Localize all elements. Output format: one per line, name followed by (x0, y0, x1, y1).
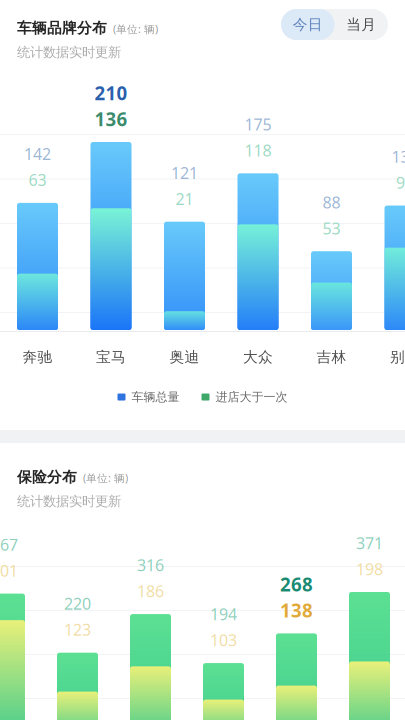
staticText: 175 (244, 114, 271, 135)
staticText: 今日 (293, 15, 323, 33)
staticText: 301 (0, 560, 18, 581)
staticText: 142 (24, 143, 51, 164)
staticText: 奥迪 (169, 348, 199, 366)
staticText: 进店大于一次 (215, 390, 287, 404)
staticText: 奔驰 (22, 348, 52, 366)
staticText: 268 (280, 572, 313, 597)
staticText: 车辆品牌分布 (17, 19, 107, 37)
staticText: 车辆总量 (131, 390, 179, 404)
staticText: 63 (28, 169, 46, 190)
staticText: 当月 (346, 15, 376, 33)
staticText: 123 (64, 619, 91, 640)
staticText: 210 (94, 81, 127, 105)
staticText: 别克 (390, 348, 405, 366)
staticText: 194 (210, 603, 237, 625)
staticText: (单位: 辆) (83, 471, 128, 485)
staticText: 138 (280, 598, 313, 623)
staticText: 53 (322, 218, 340, 239)
staticText: 220 (64, 593, 91, 614)
staticText: 121 (171, 162, 198, 183)
staticText: 21 (175, 188, 193, 209)
button[interactable]: 当月 (334, 9, 388, 40)
staticText: 88 (322, 192, 340, 213)
staticText: 367 (0, 534, 18, 555)
staticText: 136 (94, 107, 127, 131)
staticText: 316 (137, 554, 164, 576)
staticText: 371 (356, 532, 383, 554)
staticText: 统计数据实时更新 (17, 493, 121, 509)
button[interactable]: 今日 (281, 9, 334, 40)
staticText: 103 (210, 629, 237, 651)
staticText: 保险分布 (17, 468, 77, 486)
staticText: 198 (356, 558, 383, 580)
staticText: (单位: 辆) (113, 22, 158, 36)
staticText: 吉林 (316, 348, 346, 366)
staticText: 118 (244, 140, 271, 161)
staticText: 统计数据实时更新 (17, 44, 121, 60)
staticText: 宝马 (96, 348, 126, 366)
staticText: 92 (396, 172, 405, 193)
staticText: 139 (391, 146, 405, 167)
staticText: 186 (137, 580, 164, 602)
staticText: 大众 (243, 348, 273, 366)
